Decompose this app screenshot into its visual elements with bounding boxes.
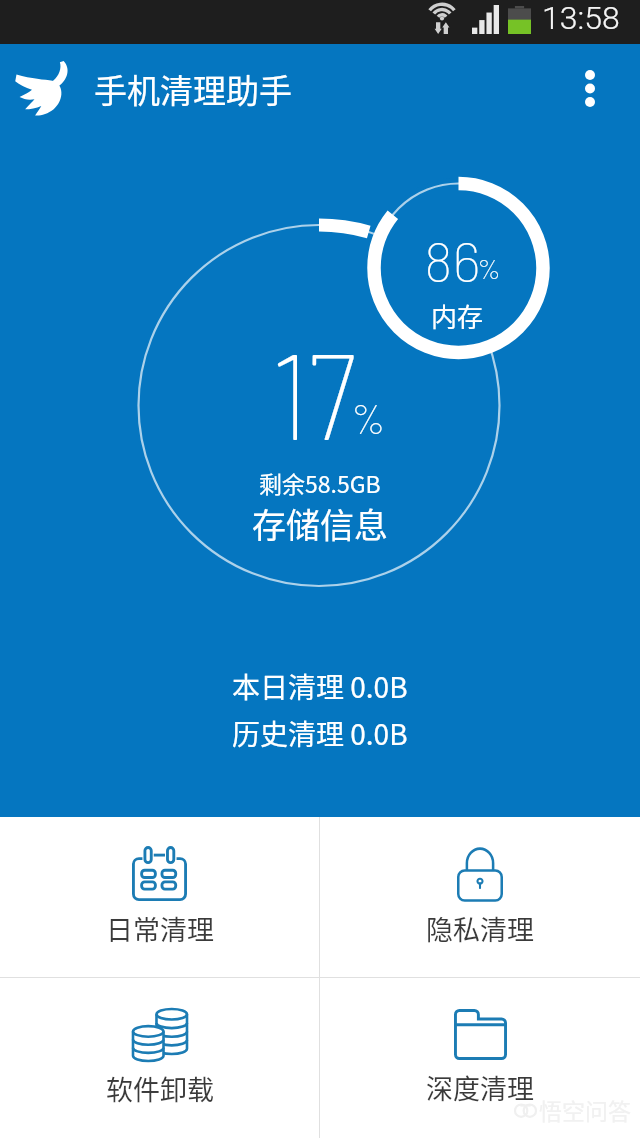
- staticText: 17: [273, 320, 357, 464]
- staticText: 日常清理: [106, 909, 214, 948]
- button[interactable]: Memory usage: [373, 182, 543, 352]
- button[interactable]: Storage info: [140, 226, 498, 584]
- staticText: 深度清理: [426, 1068, 534, 1107]
- staticText: 历史清理 0.0B: [232, 713, 408, 754]
- staticText: 手机清理助手: [94, 65, 292, 113]
- button[interactable]: More options: [578, 44, 640, 132]
- button[interactable]: 软件卸载: [0, 978, 319, 1138]
- staticText: %: [477, 251, 502, 285]
- staticText: 内存: [431, 297, 484, 335]
- staticText: 86: [424, 226, 481, 293]
- button[interactable]: 深度清理: [320, 978, 640, 1138]
- staticText: 隐私清理: [426, 909, 534, 948]
- staticText: 悟空问答: [539, 1093, 631, 1126]
- staticText: 本日清理 0.0B: [232, 666, 408, 707]
- staticText: 软件卸载: [106, 1069, 214, 1108]
- staticText: %: [351, 392, 386, 442]
- staticText: 13:58: [542, 0, 620, 37]
- staticText: 存储信息: [252, 499, 388, 548]
- button[interactable]: 隐私清理: [320, 817, 640, 977]
- button[interactable]: 日常清理: [0, 817, 319, 977]
- staticText: 剩余58.5GB: [259, 466, 381, 499]
